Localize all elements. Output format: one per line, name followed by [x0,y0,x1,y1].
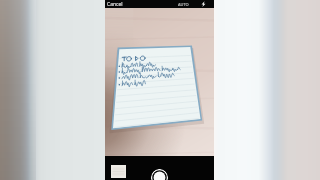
button[interactable]: Flash auto [199,0,208,8]
button[interactable]: Cancel [105,0,126,8]
button[interactable]: Take photo [151,169,168,180]
staticText: AUTO [178,2,189,7]
staticText: Cancel [107,1,123,7]
button[interactable]: AUTO [177,1,190,8]
button[interactable]: Gallery [111,165,126,178]
